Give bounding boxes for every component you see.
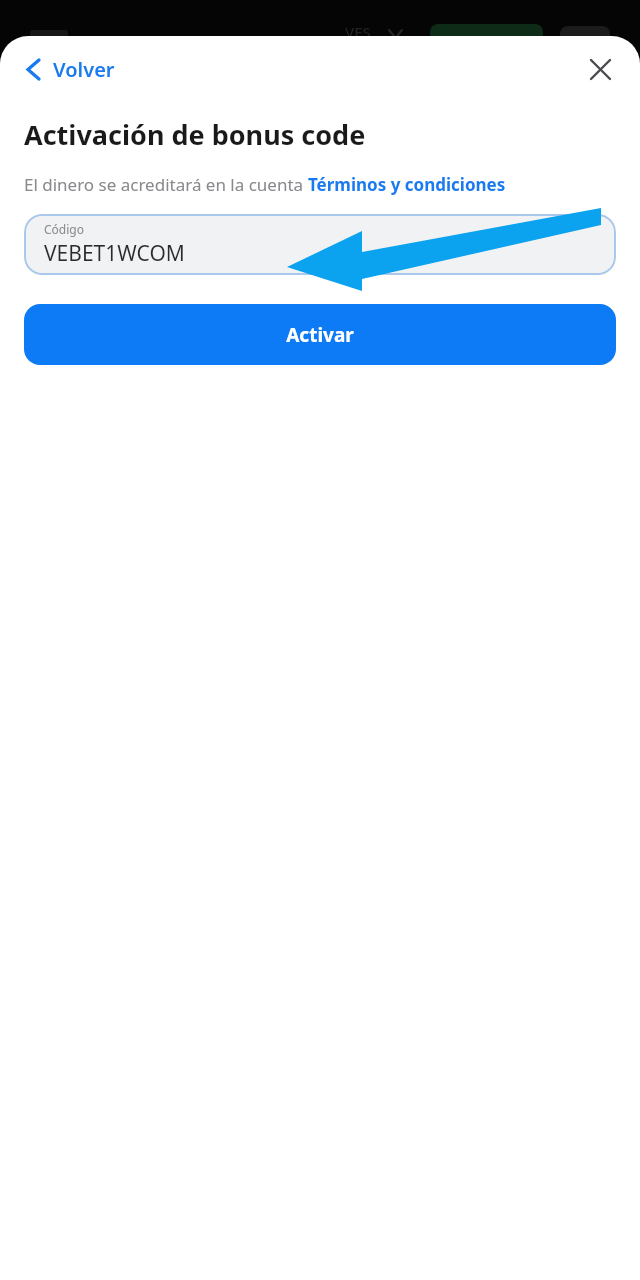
staticText: Código: [44, 221, 84, 237]
button[interactable]: Volver: [20, 50, 123, 89]
staticText: VES: [345, 22, 371, 42]
staticText: El dinero se acreditará en la cuenta: [24, 173, 308, 196]
button[interactable]: Código: [24, 214, 616, 275]
button[interactable]: Términos y condiciones: [308, 173, 506, 196]
staticText: Volver: [53, 56, 115, 83]
button[interactable]: Activar: [24, 304, 616, 365]
staticText: Activar: [286, 322, 354, 348]
staticText: Activación de bonus code: [24, 116, 366, 153]
button[interactable]: Cerrar: [580, 49, 620, 89]
staticText: VEBET1WCOM: [44, 239, 185, 268]
